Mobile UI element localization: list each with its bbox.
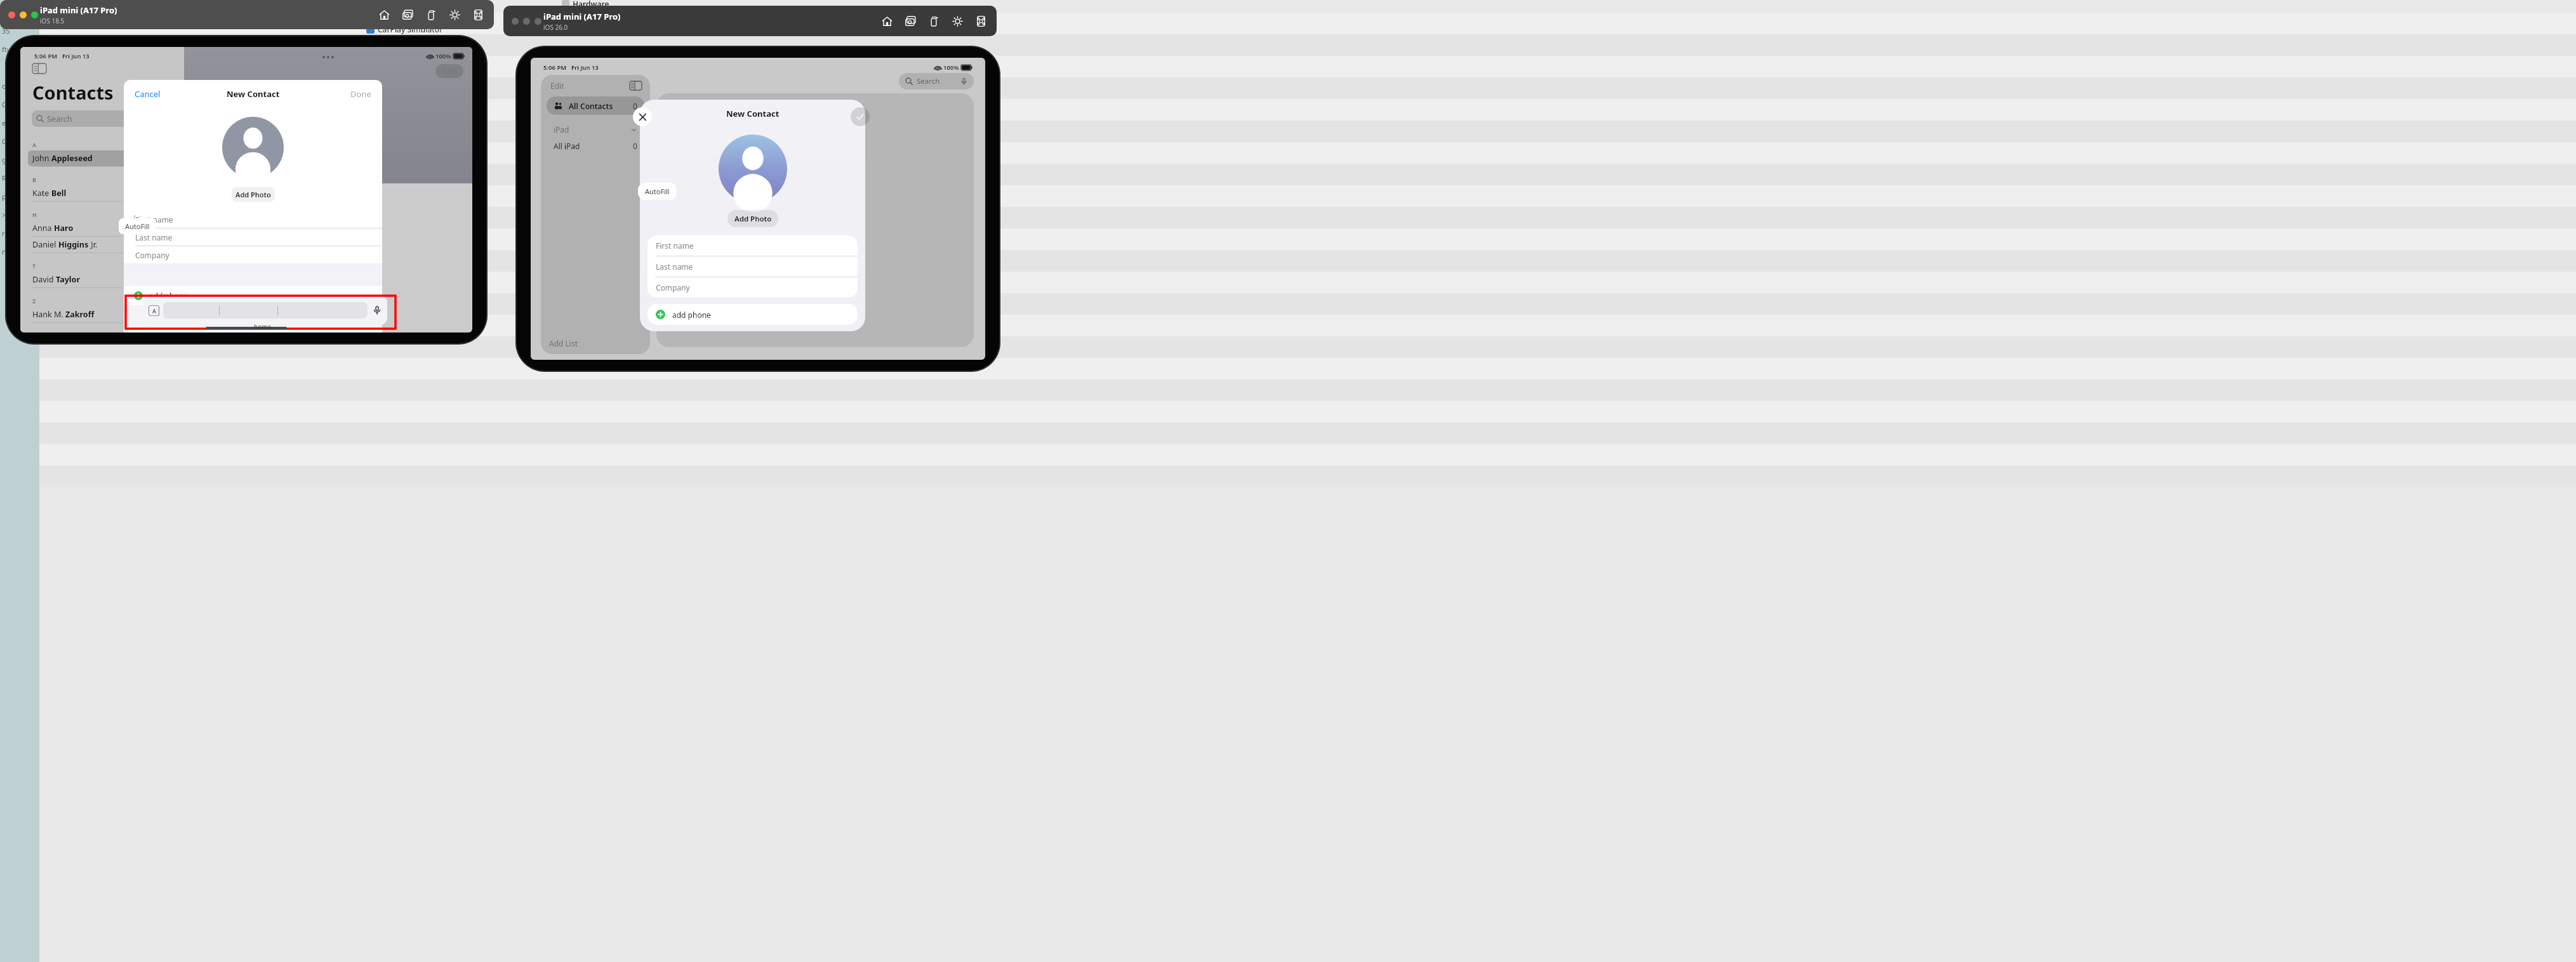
staticText: Last name: [656, 261, 693, 272]
staticText: John: [32, 153, 51, 164]
button[interactable]: First name: [647, 235, 858, 256]
button[interactable]: Window button: [31, 11, 38, 18]
staticText: Company: [135, 250, 169, 260]
staticText: Daniel: [32, 239, 58, 250]
button[interactable]: Rotate: [424, 8, 438, 22]
staticText: Edit: [550, 81, 564, 91]
button[interactable]: Home: [880, 14, 894, 28]
button[interactable]: Screenshot: [903, 14, 917, 28]
staticText: >: [2, 210, 6, 220]
button[interactable]: Window button: [512, 18, 519, 25]
button[interactable]: Appearance: [950, 14, 964, 28]
staticText: iPad: [554, 124, 569, 135]
button[interactable]: Toggle sidebar: [630, 81, 642, 90]
staticText: Haro: [54, 223, 74, 234]
staticText: Zakroff: [65, 309, 95, 320]
staticText: Search: [917, 76, 940, 86]
button[interactable]: John: [28, 150, 176, 166]
button[interactable]: First name: [124, 211, 382, 228]
staticText: No Contact Selected: [767, 214, 863, 227]
staticText: All Contacts: [569, 101, 613, 111]
button[interactable]: Cancel: [132, 86, 163, 102]
button[interactable]: Hank M.: [28, 306, 176, 322]
button[interactable]: Screenshot: [401, 8, 415, 22]
staticText: 0: [633, 141, 637, 151]
button[interactable]: Window button: [534, 18, 541, 25]
button[interactable]: add email: [124, 328, 382, 333]
staticText: Higgins: [58, 239, 89, 250]
button[interactable]: Search: [899, 73, 974, 89]
staticText: R: [2, 173, 6, 183]
staticText: New Contact: [227, 88, 280, 100]
staticText: pp: [2, 192, 11, 201]
staticText: Jr.: [89, 239, 98, 250]
staticText: Hank M.: [32, 309, 65, 320]
staticText: Cancel: [135, 88, 161, 100]
staticText: First name: [656, 240, 694, 251]
button[interactable]: Search: [32, 110, 173, 127]
staticText: Company: [656, 282, 690, 293]
button[interactable]: AutoFill: [638, 183, 677, 200]
button[interactable]: All Contacts: [547, 96, 644, 115]
button[interactable]: Last name: [647, 256, 858, 277]
button[interactable]: add phone: [124, 286, 382, 305]
button[interactable]: Window button: [20, 11, 27, 18]
button[interactable]: Window button: [8, 11, 15, 18]
staticText: H: [32, 211, 37, 218]
staticText: Done: [350, 88, 371, 100]
staticText: T: [32, 262, 36, 270]
button[interactable]: Home: [377, 8, 391, 22]
staticText: New Contact: [726, 108, 780, 119]
button[interactable]: Keyboard candidate bar: [143, 296, 387, 325]
button[interactable]: Keyboard shortcuts: [974, 14, 988, 28]
staticText: 5:06 PM: [34, 52, 58, 60]
staticText: AutoFill: [125, 221, 150, 231]
staticText: iPad mini (A17 Pro): [40, 4, 117, 16]
staticText: David: [32, 274, 56, 285]
staticText: Anna: [32, 223, 54, 234]
staticText: el: [2, 118, 8, 128]
button[interactable]: iPad: [541, 121, 650, 138]
button[interactable]: Close: [633, 107, 652, 126]
staticText: add phone: [672, 310, 711, 320]
button[interactable]: Add Photo: [727, 210, 778, 227]
staticText: ro: [2, 228, 9, 238]
staticText: A: [152, 307, 156, 315]
button[interactable]: Window button: [523, 18, 530, 25]
staticText: Taylor: [56, 274, 80, 285]
button[interactable]: Company: [124, 246, 382, 263]
button[interactable]: Daniel: [28, 237, 176, 253]
button[interactable]: Keyboard shortcuts: [471, 8, 485, 22]
button[interactable]: Company: [647, 277, 858, 298]
button[interactable]: Add List: [541, 333, 650, 354]
staticText: home: [254, 322, 272, 331]
button[interactable]: Add Photo: [232, 187, 275, 202]
button[interactable]: Anna: [28, 220, 176, 236]
staticText: Add Photo: [236, 190, 271, 199]
staticText: B: [32, 176, 36, 183]
button[interactable]: Appearance: [448, 8, 461, 22]
button[interactable]: add phone: [647, 304, 858, 325]
button[interactable]: Edit: [435, 64, 463, 78]
staticText: C: [2, 100, 6, 109]
button[interactable]: Toggle sidebar: [32, 63, 46, 74]
button[interactable]: Last name: [124, 228, 382, 246]
staticText: 5:06 PM: [543, 63, 567, 72]
staticText: Add Photo: [734, 214, 772, 224]
staticText: Appleseed: [51, 153, 93, 164]
button[interactable]: Done: [851, 107, 870, 126]
staticText: Gl: [2, 136, 9, 146]
staticText: Contacts: [32, 80, 114, 105]
button[interactable]: AutoFill: [119, 218, 156, 234]
button[interactable]: David: [28, 272, 176, 287]
button[interactable]: Edit: [549, 79, 566, 92]
staticText: add phone: [149, 291, 188, 301]
staticText: ftu: [2, 44, 11, 54]
staticText: 0: [633, 101, 637, 111]
button[interactable]: All iPad: [541, 138, 650, 154]
button[interactable]: Rotate: [927, 14, 941, 28]
staticText: AutoFill: [645, 187, 670, 196]
staticText: A: [32, 141, 37, 148]
button[interactable]: Kate: [28, 185, 176, 201]
button[interactable]: Done: [348, 86, 374, 102]
